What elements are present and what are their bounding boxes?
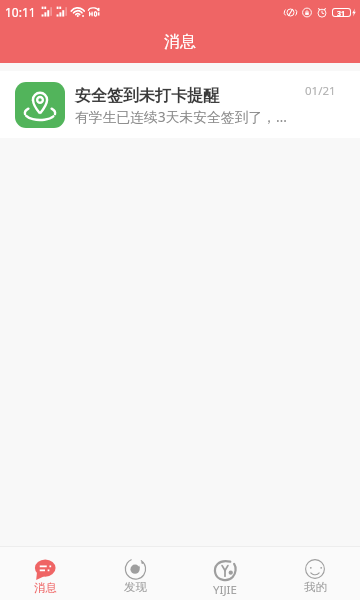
button[interactable]: YIJIE	[180, 547, 270, 600]
staticText: 有学生已连续3天未安全签到了，…	[75, 107, 287, 126]
button[interactable]: 安全签到未打卡提醒	[0, 71, 360, 138]
button[interactable]: 消息	[0, 547, 90, 600]
staticText: 安全签到未打卡提醒	[75, 86, 219, 106]
staticText: 消息	[164, 32, 196, 52]
staticText: 消息	[34, 581, 57, 595]
staticText: 10:11	[5, 4, 36, 20]
staticText: 发现	[124, 580, 147, 594]
staticText: 我的	[304, 580, 327, 594]
button[interactable]: 发现	[90, 547, 180, 600]
button[interactable]: 我的	[270, 547, 360, 600]
staticText: YIJIE	[213, 582, 237, 598]
staticText: 31	[337, 9, 346, 16]
staticText: 01/21	[305, 83, 336, 99]
